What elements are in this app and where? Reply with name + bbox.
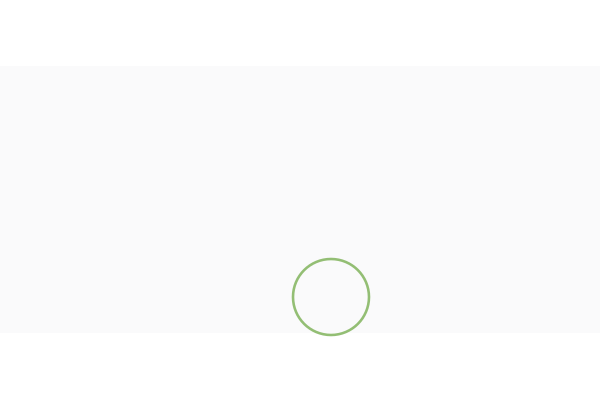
button[interactable]: Progress: [293, 259, 369, 335]
